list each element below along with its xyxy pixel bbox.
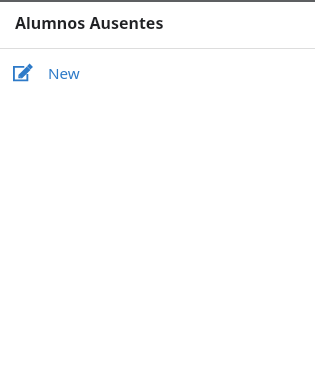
other: New [9,62,35,86]
button[interactable]: New [0,53,92,89]
staticText: Alumnos Ausentes [15,12,164,34]
staticText: New [48,63,80,84]
